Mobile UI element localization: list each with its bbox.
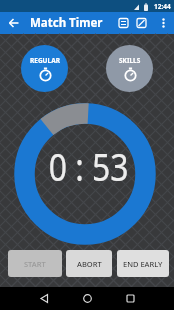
- staticText: END EARLY: [123, 259, 163, 269]
- button[interactable]: [109, 287, 152, 310]
- button[interactable]: ABORT: [66, 250, 112, 277]
- button[interactable]: [114, 14, 132, 32]
- button[interactable]: END EARLY: [117, 250, 169, 277]
- button[interactable]: [132, 14, 150, 32]
- button[interactable]: START: [8, 250, 62, 277]
- button[interactable]: [66, 287, 109, 310]
- button[interactable]: [23, 287, 66, 310]
- staticText: SKILLS: [119, 56, 141, 65]
- button[interactable]: [154, 14, 173, 33]
- staticText: ABORT: [77, 259, 102, 269]
- staticText: REGULAR: [30, 56, 60, 65]
- staticText: 0 : 53: [49, 140, 129, 182]
- button[interactable]: REGULAR: [21, 45, 68, 92]
- staticText: 12:44: [154, 2, 171, 11]
- button[interactable]: SKILLS: [106, 45, 153, 92]
- staticText: START: [24, 259, 46, 269]
- button[interactable]: [0, 12, 22, 34]
- staticText: Match Timer: [30, 15, 103, 31]
